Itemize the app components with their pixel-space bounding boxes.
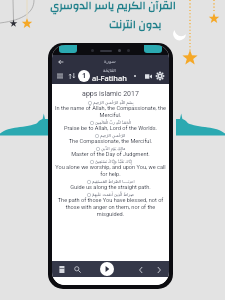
staticText: The path of those You have blessed, not … [53, 197, 168, 218]
staticText: الرَّحْمـنِ الرَّحِيمِ [100, 133, 126, 138]
button[interactable]: Settings [155, 71, 165, 81]
staticText: إِيَّاك نَعْبُدُ وإِيَّاكَ نَسْتَعِينُ [95, 159, 132, 164]
staticText: الفَاتِحَة [103, 68, 116, 73]
button[interactable]: Search [72, 264, 83, 275]
staticText: القرآن الكريم ياسر الدوسري [50, 0, 176, 16]
button[interactable]: إِيَّاك نَعْبُدُ وإِيَّاكَ نَسْتَعِينُ [52, 159, 169, 179]
button[interactable]: Bookmarks [57, 264, 68, 275]
button[interactable]: صِرَاطَ الَّذِينَ أَنعَمتَ عَلَيهِمْ [52, 192, 169, 219]
staticText: Praise be to Allah, Lord of the Worlds. [53, 125, 168, 132]
staticText: صِرَاطَ الَّذِينَ أَنعَمتَ عَلَيهِمْ [92, 192, 134, 197]
button[interactable]: الرَّحْمـنِ الرَّحِيمِ [52, 133, 169, 146]
button[interactable]: Sort [67, 71, 77, 81]
button[interactable]: مَالِكِ يَوْمِ الدِّينِ [52, 146, 169, 159]
staticText: Master of the Day of Judgment. [53, 151, 168, 158]
button[interactable]: Play [100, 262, 114, 276]
staticText: سورة [104, 58, 116, 64]
button[interactable]: بِسْمِ اللّهِ الرَّحْمـنِ الرَّحِيمِ [52, 100, 169, 120]
staticText: You alone we worship, and upon You, we c… [53, 164, 168, 178]
staticText: 1 [82, 71, 87, 81]
button[interactable]: Next [153, 264, 164, 275]
staticText: مَالِكِ يَوْمِ الدِّينِ [101, 146, 126, 151]
staticText: Guide us along the straight path. [53, 184, 168, 191]
button[interactable]: Menu [55, 71, 65, 81]
staticText: بِسْمِ اللّهِ الرَّحْمـنِ الرَّحِيمِ [93, 100, 134, 105]
staticText: اهدِنَــــا الصِّرَاطَ المُستَقِيمَ [92, 179, 135, 184]
button[interactable]: اهدِنَــــا الصِّرَاطَ المُستَقِيمَ [52, 179, 169, 192]
button[interactable]: Night mode [143, 71, 153, 81]
button[interactable]: Back [56, 57, 65, 66]
staticText: In the name of Allah, the Compassionate,… [53, 105, 168, 119]
button[interactable]: الْحَمْدُ للّهِ رَبِّ الْعَالَمِينَ [52, 120, 169, 133]
staticText: apps islamic 2017 [52, 90, 169, 98]
button[interactable]: Previous [135, 264, 146, 275]
staticText: al-Fatihah [92, 73, 127, 83]
staticText: The Compassionate, the Merciful. [53, 138, 168, 145]
staticText: بدون انترنت [109, 15, 162, 35]
staticText: الْحَمْدُ للّهِ رَبِّ الْعَالَمِينَ [95, 120, 132, 125]
